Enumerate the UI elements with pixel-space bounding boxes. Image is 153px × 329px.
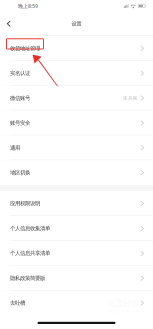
- button[interactable]: 通用: [0, 135, 153, 160]
- staticText: 通用: [10, 144, 20, 151]
- staticText: 实名认证: [10, 70, 30, 77]
- staticText: 个人信息收集清单: [10, 225, 50, 232]
- staticText: 收货地址管理: [10, 45, 40, 52]
- button[interactable]: 地区切换: [0, 160, 153, 185]
- button[interactable]: 应用权限说明: [0, 191, 153, 216]
- button[interactable]: 去吐槽: [0, 291, 153, 315]
- staticText: 晚上8:59: [18, 2, 38, 10]
- staticText: 隐私政策简要版: [10, 275, 45, 282]
- staticText: 设置: [71, 20, 81, 27]
- staticText: 去吐槽: [10, 300, 25, 306]
- button[interactable]: 实名认证: [0, 61, 153, 86]
- staticText: 账号安全: [10, 119, 30, 126]
- staticText: 个人信息共享清单: [10, 250, 50, 257]
- staticText: 微信账号: [10, 95, 30, 101]
- button[interactable]: 个人信息收集清单: [0, 216, 153, 241]
- button[interactable]: 收货地址管理: [0, 36, 153, 61]
- staticText: 未关联: [123, 95, 138, 101]
- button[interactable]: 隐私政策简要版: [0, 266, 153, 291]
- staticText: 应用权限说明: [10, 200, 40, 207]
- button[interactable]: Back: [0, 13, 19, 34]
- staticText: 地区切换: [10, 169, 30, 176]
- button[interactable]: 微信账号: [0, 86, 153, 110]
- button[interactable]: 个人信息共享清单: [0, 241, 153, 266]
- button[interactable]: 账号安全: [0, 110, 153, 135]
